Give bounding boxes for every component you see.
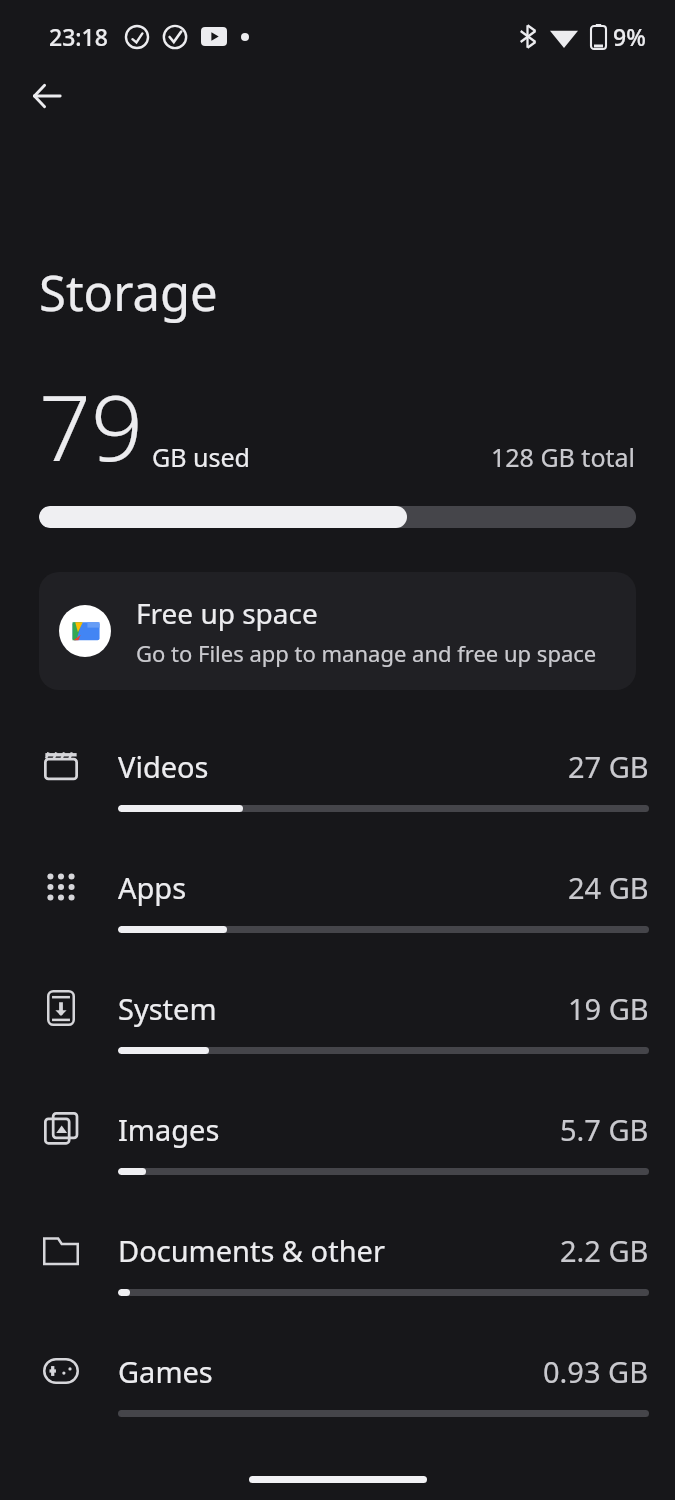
- staticText: 2.2 GB: [560, 1231, 649, 1270]
- button[interactable]: Documents & other: [0, 1211, 675, 1332]
- staticText: 5.7 GB: [560, 1110, 649, 1149]
- staticText: Videos: [118, 747, 568, 786]
- button[interactable]: Back: [23, 72, 71, 120]
- staticText: 79: [39, 364, 143, 488]
- staticText: System: [118, 989, 568, 1028]
- staticText: 19 GB: [568, 989, 649, 1028]
- staticText: 24 GB: [568, 868, 649, 907]
- staticText: 27 GB: [568, 747, 649, 786]
- staticText: Images: [118, 1110, 560, 1149]
- button[interactable]: Images: [0, 1090, 675, 1211]
- button[interactable]: Apps: [0, 848, 675, 969]
- staticText: 9%: [613, 21, 646, 52]
- button[interactable]: Games: [0, 1332, 675, 1453]
- staticText: Storage: [39, 259, 218, 326]
- staticText: Apps: [118, 868, 568, 907]
- button[interactable]: System: [0, 969, 675, 1090]
- button[interactable]: Videos: [0, 727, 675, 848]
- staticText: 23:18: [49, 21, 108, 52]
- button[interactable]: Free up space: [39, 572, 636, 690]
- staticText: Documents & other: [118, 1231, 560, 1270]
- staticText: Go to Files app to manage and free up sp…: [136, 638, 597, 668]
- staticText: Free up space: [136, 594, 318, 632]
- staticText: GB used: [152, 440, 250, 474]
- staticText: Games: [118, 1352, 543, 1391]
- staticText: 128 GB total: [491, 440, 636, 474]
- staticText: 0.93 GB: [543, 1352, 649, 1391]
